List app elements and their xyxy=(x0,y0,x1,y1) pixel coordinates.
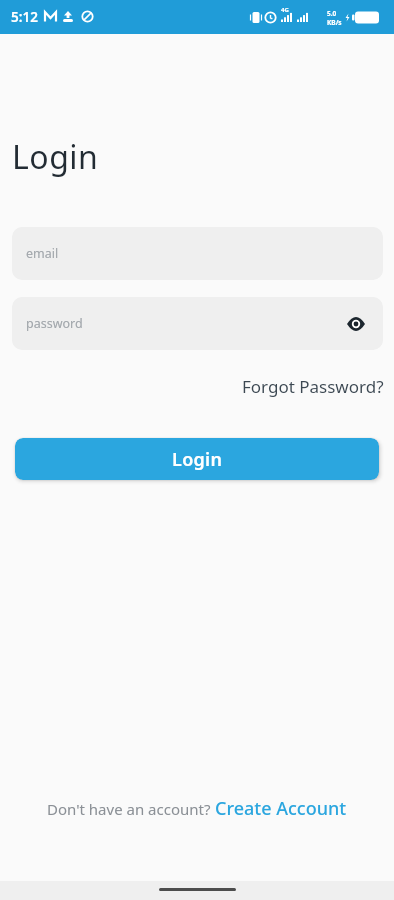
staticText: 5.0 xyxy=(327,9,337,18)
staticText: password xyxy=(26,315,83,332)
staticText: Login xyxy=(12,135,99,179)
button[interactable] xyxy=(346,316,366,332)
button[interactable]: Login xyxy=(15,438,379,480)
staticText: email xyxy=(26,245,59,262)
staticText: Don't have an account? xyxy=(47,799,215,819)
staticText: Login xyxy=(172,447,223,472)
button[interactable]: Forgot Password? xyxy=(242,375,384,398)
staticText: 4G xyxy=(281,6,289,14)
button[interactable]: Create Account xyxy=(215,796,347,821)
staticText: 5:12 xyxy=(11,8,38,26)
staticText: KB/s xyxy=(327,18,342,27)
button[interactable]: password xyxy=(12,297,383,350)
button[interactable]: email xyxy=(12,227,383,280)
